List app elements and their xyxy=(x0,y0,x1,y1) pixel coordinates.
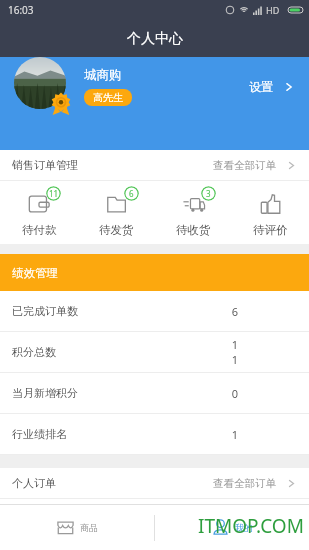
button[interactable]: 销售订单管理 xyxy=(0,150,309,180)
button[interactable]: 当月新增积分 xyxy=(0,373,309,413)
staticText: 11 xyxy=(49,188,59,199)
staticText: 待发货 xyxy=(99,223,134,237)
staticText: 3 xyxy=(206,188,211,199)
staticText: 行业绩排名 xyxy=(12,427,67,441)
button[interactable]: 商品 xyxy=(0,505,154,550)
staticText: 城商购 xyxy=(84,67,122,83)
button[interactable]: 6 xyxy=(78,189,155,237)
staticText: 0 xyxy=(229,386,241,401)
button[interactable]: 我的 xyxy=(155,505,309,550)
staticText: 销售订单管理 xyxy=(12,158,78,172)
button[interactable]: 11 xyxy=(0,189,78,237)
staticText: 已完成订单数 xyxy=(12,304,78,318)
staticText: ITMOP.COM xyxy=(198,513,304,539)
button[interactable]: 积分总数 xyxy=(0,332,309,372)
staticText: 查看全部订单 xyxy=(213,477,276,490)
staticText: 设置 xyxy=(249,79,273,94)
staticText: 高先生 xyxy=(93,91,123,104)
staticText: 16:03 xyxy=(8,3,34,17)
staticText: 11 xyxy=(229,337,241,367)
staticText: 绩效管理 xyxy=(12,266,58,280)
button[interactable]: 待评价 xyxy=(232,189,309,237)
button[interactable]: 行业绩排名 xyxy=(0,414,309,454)
staticText: HD xyxy=(266,4,280,16)
button[interactable]: 已完成订单数 xyxy=(0,291,309,331)
staticText: 个人订单 xyxy=(12,476,56,490)
staticText: 积分总数 xyxy=(12,345,56,359)
staticText: 查看全部订单 xyxy=(213,159,276,172)
staticText: 6 xyxy=(129,188,134,199)
staticText: 当月新增积分 xyxy=(12,386,78,400)
staticText: 1 xyxy=(229,427,241,442)
staticText: 待收货 xyxy=(176,223,211,237)
button[interactable]: 3 xyxy=(155,189,232,237)
staticText: 商品 xyxy=(80,522,98,533)
button[interactable]: 个人订单 xyxy=(0,468,309,498)
button[interactable]: 城商购 xyxy=(0,57,309,150)
staticText: 个人中心 xyxy=(127,30,183,48)
staticText: 我的 xyxy=(235,522,253,533)
staticText: 6 xyxy=(229,304,241,319)
staticText: 待评价 xyxy=(253,223,288,237)
staticText: 待付款 xyxy=(22,223,57,237)
